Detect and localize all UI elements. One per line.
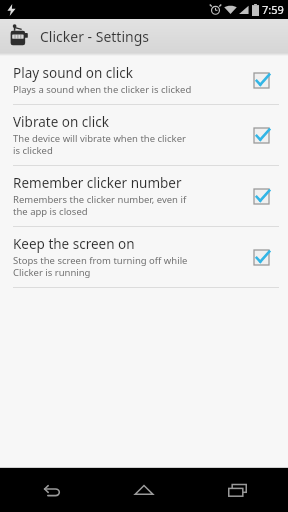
button[interactable]: Toggle setting xyxy=(247,182,275,210)
staticText: Vibrate on click xyxy=(13,113,109,131)
staticText: Play sound on click xyxy=(13,64,133,82)
button[interactable]: Back xyxy=(9,468,93,512)
staticText: 7:59 xyxy=(262,2,284,17)
staticText: The device will vibrate when the clicker… xyxy=(13,132,186,157)
button[interactable]: Keep the screen on xyxy=(0,227,288,287)
staticText: Stops the screen from turning off while … xyxy=(13,254,188,279)
button[interactable]: Toggle setting xyxy=(247,243,275,271)
staticText: Remembers the clicker number, even if th… xyxy=(13,193,187,218)
button[interactable]: Home xyxy=(102,468,186,512)
button[interactable]: Play sound on click xyxy=(0,56,288,104)
button[interactable]: Vibrate on click xyxy=(0,105,288,165)
button[interactable]: Recent apps xyxy=(195,468,279,512)
staticText: Plays a sound when the clicker is clicke… xyxy=(13,83,192,96)
staticText: Remember clicker number xyxy=(13,174,182,192)
button[interactable]: Remember clicker number xyxy=(0,166,288,226)
button[interactable]: Toggle setting xyxy=(247,66,275,94)
staticText: Clicker - Settings xyxy=(40,27,150,46)
staticText: Keep the screen on xyxy=(13,235,135,253)
button[interactable]: Toggle setting xyxy=(247,121,275,149)
